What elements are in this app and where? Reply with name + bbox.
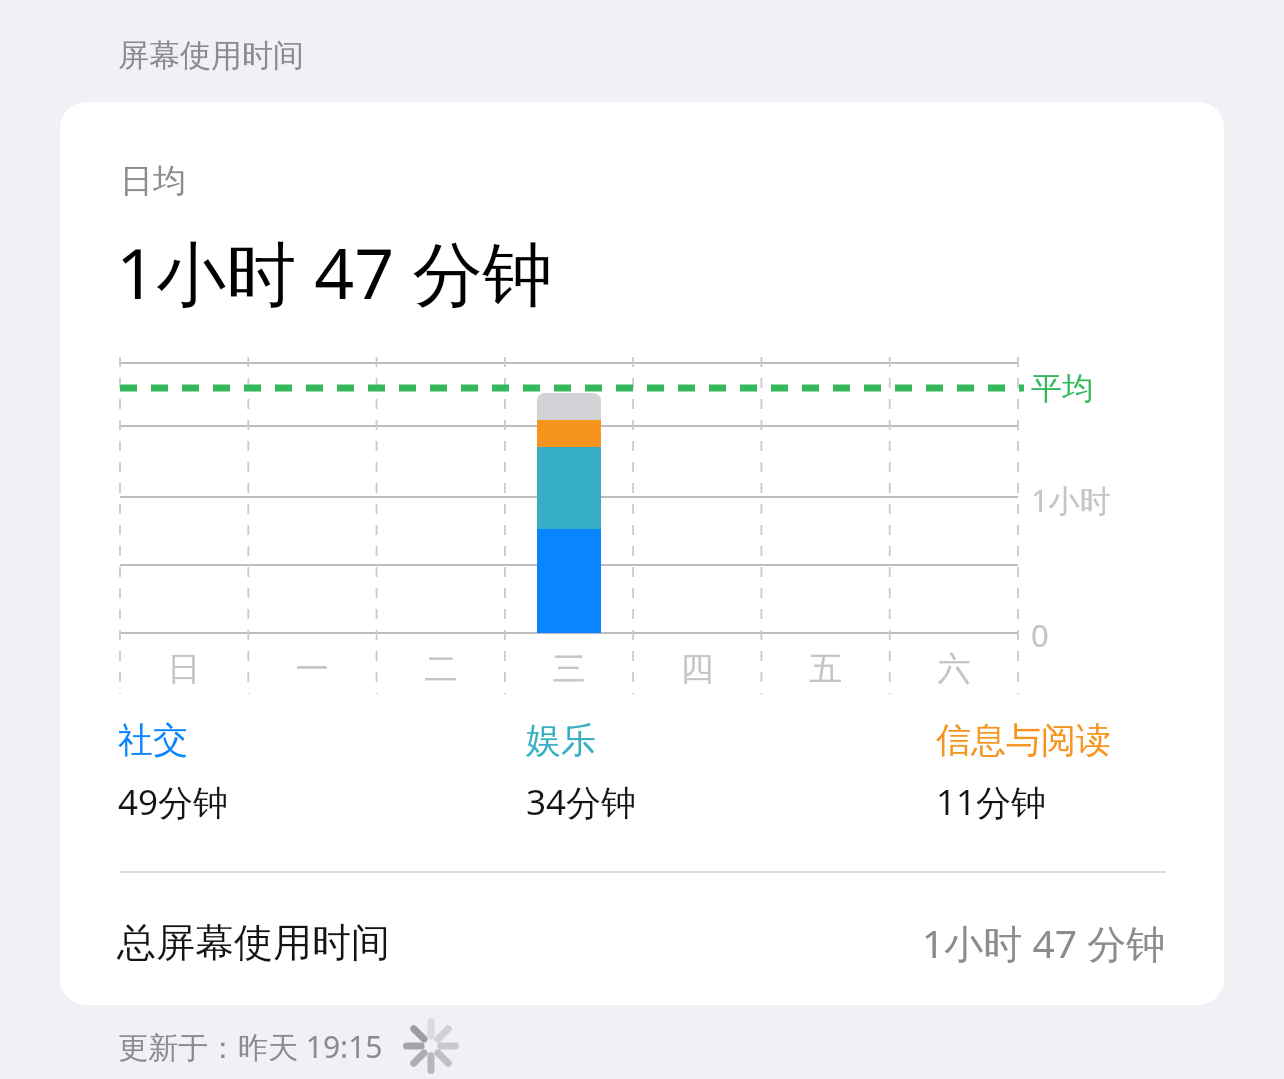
staticText: 49分钟 — [118, 778, 229, 826]
staticText: 总屏幕使用时间 — [117, 918, 390, 967]
staticText: 二 — [377, 648, 505, 690]
staticText: 1小时 47 分钟 — [116, 224, 553, 320]
staticText: 屏幕使用时间 — [118, 36, 304, 75]
staticText: 日 — [120, 648, 248, 690]
staticText: 六 — [890, 648, 1018, 690]
staticText: 五 — [762, 648, 890, 690]
staticText: 1小时 — [1031, 479, 1111, 521]
staticText: 11分钟 — [936, 778, 1047, 826]
button[interactable]: 日均 — [60, 102, 1224, 1005]
button[interactable]: 总屏幕使用时间 — [60, 892, 1224, 992]
staticText: 平均 — [1031, 369, 1093, 408]
other: Refreshing — [405, 1020, 457, 1072]
staticText: 三 — [505, 648, 633, 690]
staticText: 娱乐 — [526, 718, 596, 762]
staticText: 34分钟 — [526, 778, 637, 826]
staticText: 社交 — [118, 718, 188, 762]
button[interactable]: 娱乐 — [526, 718, 637, 826]
button[interactable]: 社交 — [118, 718, 229, 826]
button[interactable]: 信息与阅读 — [936, 718, 1111, 826]
staticText: 日均 — [120, 160, 186, 202]
staticText: 更新于：昨天 19:15 — [118, 1026, 383, 1067]
staticText: 四 — [633, 648, 761, 690]
staticText: 0 — [1031, 614, 1049, 656]
staticText: 1小时 47 分钟 — [922, 916, 1166, 969]
staticText: 一 — [248, 648, 376, 690]
staticText: 信息与阅读 — [936, 718, 1111, 762]
